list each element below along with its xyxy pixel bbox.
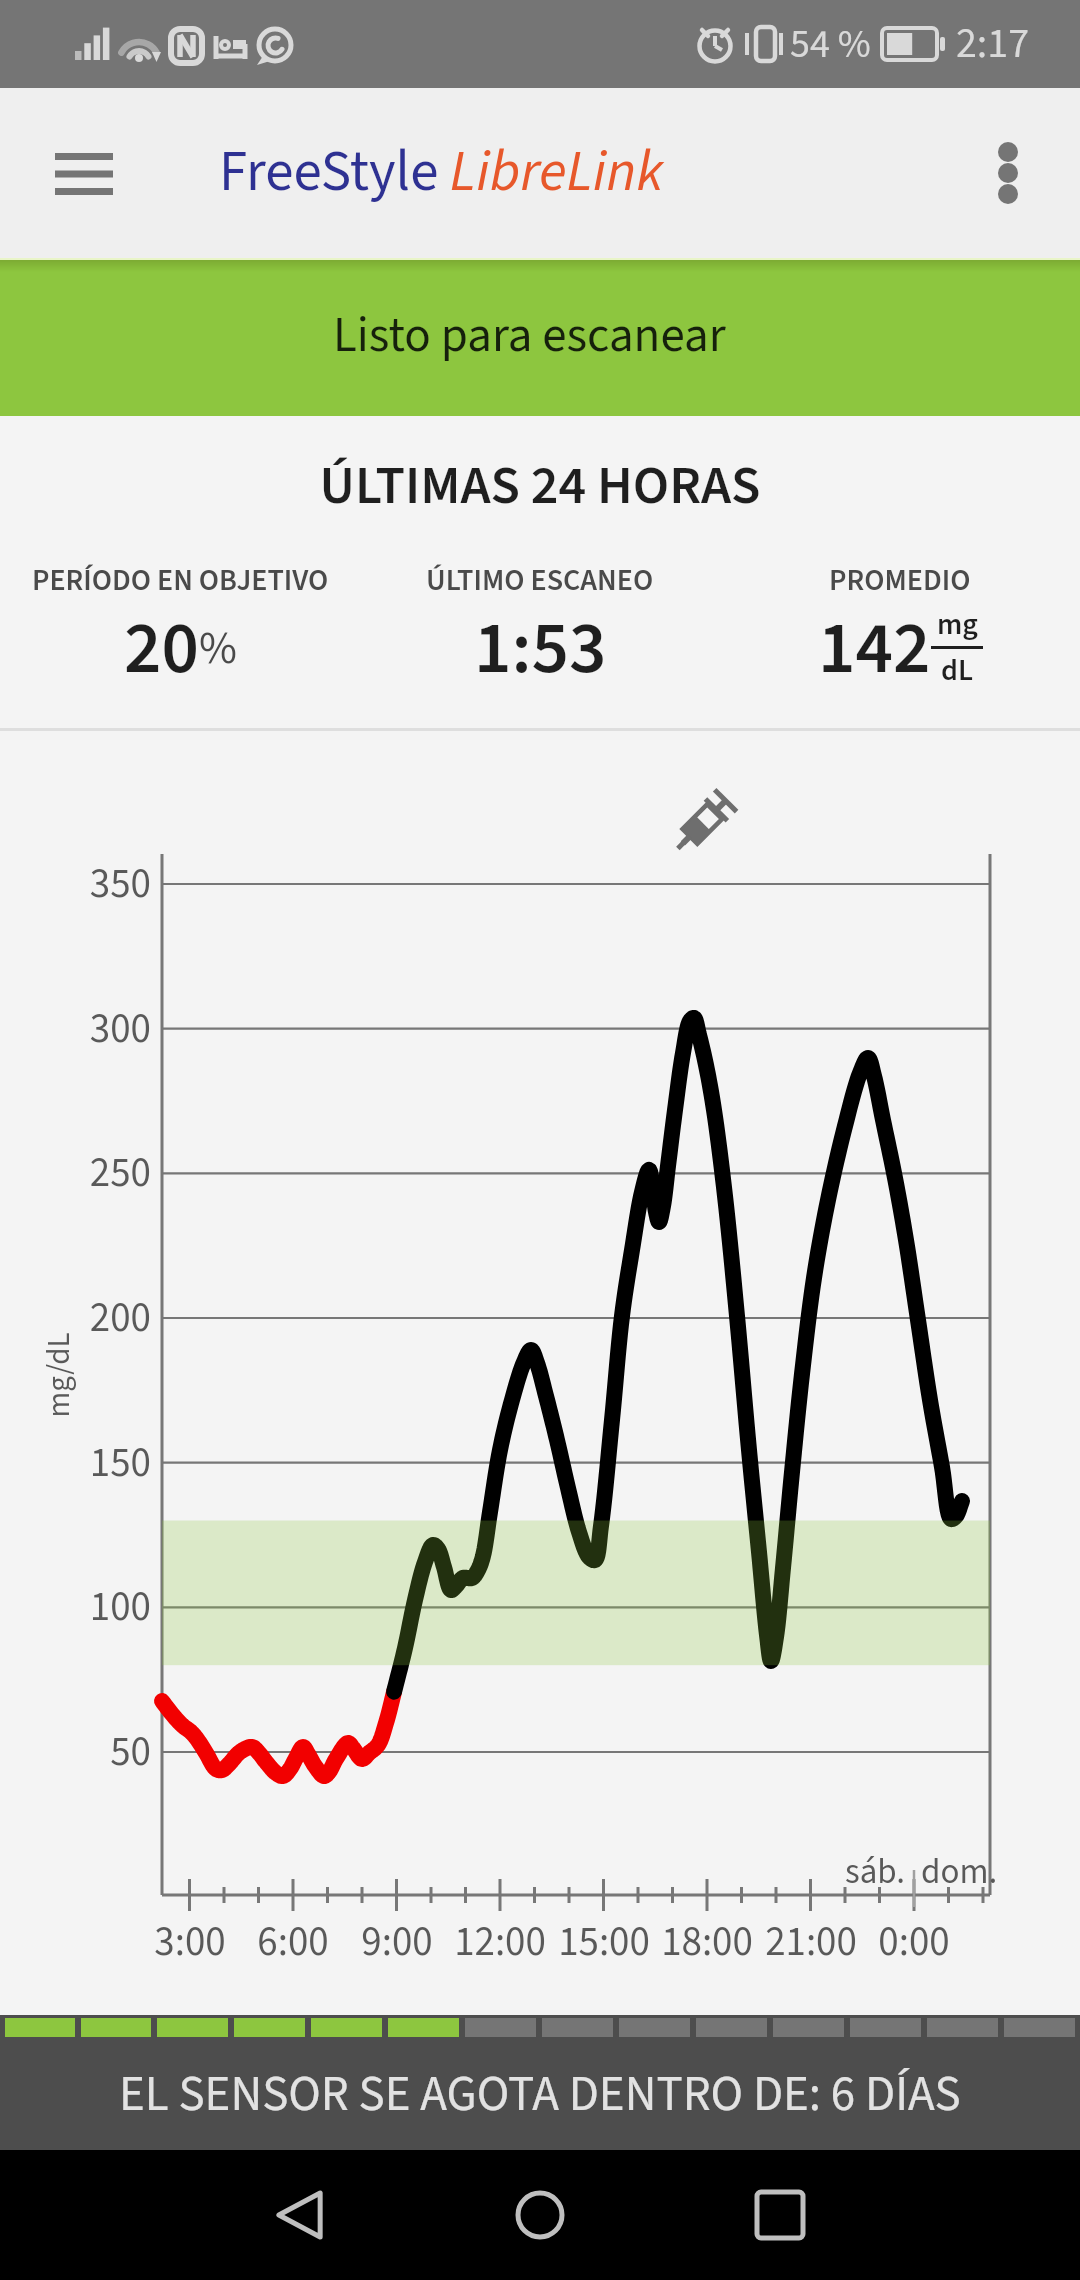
staticText: 0:00 (814, 1913, 1014, 1971)
staticText: % (199, 616, 237, 682)
staticText: 1:53 (474, 597, 607, 701)
staticText: 350 (1, 855, 151, 913)
staticText: sáb. (800, 1847, 905, 1897)
staticText: 9:00 (297, 1913, 497, 1971)
other: Insulin note (673, 794, 733, 854)
staticText: 20 (124, 597, 199, 701)
staticText: 142 (818, 597, 931, 701)
staticText: ÚLTIMAS 24 HORAS (0, 448, 1080, 525)
staticText: 2:17 (956, 14, 1030, 74)
button[interactable]: ÚLTIMO ESCANEO (360, 559, 720, 706)
staticText: 150 (1, 1434, 151, 1492)
staticText: 15:00 (504, 1913, 704, 1971)
staticText: PERÍODO EN OBJETIVO (32, 559, 329, 602)
staticText: 54 % (790, 16, 871, 73)
staticText: 12:00 (400, 1913, 600, 1971)
staticText: Listo para escanear (333, 301, 726, 371)
staticText: 200 (1, 1289, 151, 1347)
staticText: 250 (1, 1144, 151, 1202)
staticText: ÚLTIMO ESCANEO (426, 559, 654, 602)
staticText: dom. (921, 1847, 1031, 1897)
staticText: EL SENSOR SE AGOTA DENTRO DE: 6 DÍAS (119, 2060, 961, 2130)
button[interactable]: Home (480, 2155, 600, 2275)
staticText: 50 (1, 1723, 151, 1781)
button[interactable]: Menu (28, 117, 140, 229)
button[interactable]: More options (952, 117, 1064, 229)
button[interactable]: EL SENSOR SE AGOTA DENTRO DE: 6 DÍAS (0, 2039, 1080, 2150)
staticText: 21:00 (711, 1913, 911, 1971)
staticText: 18:00 (607, 1913, 807, 1971)
staticText: 100 (1, 1578, 151, 1636)
staticText: PROMEDIO (829, 559, 971, 602)
button[interactable]: PERÍODO EN OBJETIVO (0, 559, 360, 706)
staticText: 3:00 (90, 1913, 290, 1971)
staticText: dL (941, 649, 973, 692)
staticText: mg/dL (36, 1332, 80, 1417)
staticText: mg (937, 603, 978, 646)
button[interactable]: Listo para escanear (0, 258, 1080, 416)
button[interactable]: Recents (720, 2155, 840, 2275)
staticText: 300 (1, 1000, 151, 1058)
staticText: FreeStyle LibreLink (219, 132, 664, 213)
button[interactable]: PROMEDIO (720, 559, 1080, 706)
button[interactable]: Back (240, 2155, 360, 2275)
staticText: 6:00 (193, 1913, 393, 1971)
